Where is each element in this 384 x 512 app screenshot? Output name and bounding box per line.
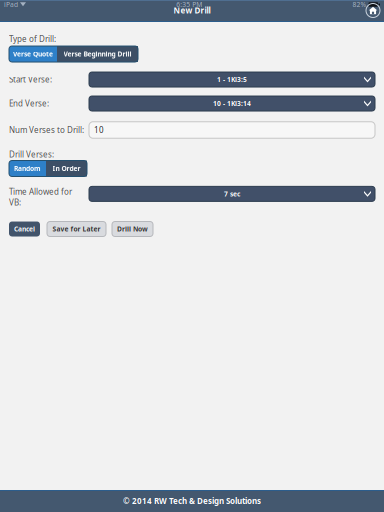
staticText: In Order — [52, 164, 80, 173]
staticText: Drill Verses: — [9, 149, 54, 160]
staticText: Num Verses to Drill: — [9, 125, 84, 135]
button[interactable]: Save for Later — [47, 221, 106, 236]
staticText: 6:35 PM — [176, 0, 202, 9]
staticText: Verse Beginning Drill — [63, 50, 131, 58]
staticText: 82% — [352, 0, 366, 9]
button[interactable]: Verse Beginning Drill — [57, 46, 138, 62]
staticText: 7 sec — [224, 189, 240, 198]
staticText: Start Verse: — [9, 74, 52, 85]
staticText: End Verse: — [9, 98, 49, 109]
button[interactable]: Verse Quote — [9, 46, 57, 62]
staticText: iPad — [4, 0, 18, 9]
button[interactable]: 10 - 1Ki3:14 — [89, 96, 375, 111]
staticText: Random — [14, 164, 41, 173]
staticText: Verse Quote — [13, 50, 53, 58]
button[interactable]: Home — [364, 1, 382, 19]
button[interactable]: 1 - 1Ki3:5 — [89, 72, 375, 87]
button[interactable]: In Order — [46, 160, 87, 176]
staticText: Cancel — [14, 225, 35, 233]
staticText: New Drill — [173, 5, 210, 16]
button[interactable]: 7 sec — [89, 186, 375, 201]
button[interactable]: Random — [9, 160, 46, 176]
staticText: Type of Drill: — [9, 34, 56, 44]
staticText: 1 - 1Ki3:5 — [217, 75, 247, 84]
staticText: Time Allowed for VB: — [9, 186, 72, 208]
staticText: © 2014 RW Tech & Design Solutions — [123, 496, 261, 506]
staticText: 10 - 1Ki3:14 — [213, 99, 251, 108]
button[interactable]: Drill Now — [112, 221, 153, 236]
button[interactable]: Cancel — [9, 221, 40, 236]
staticText: 10 — [94, 125, 104, 135]
staticText: Save for Later — [52, 225, 100, 233]
staticText: Drill Now — [117, 225, 148, 233]
